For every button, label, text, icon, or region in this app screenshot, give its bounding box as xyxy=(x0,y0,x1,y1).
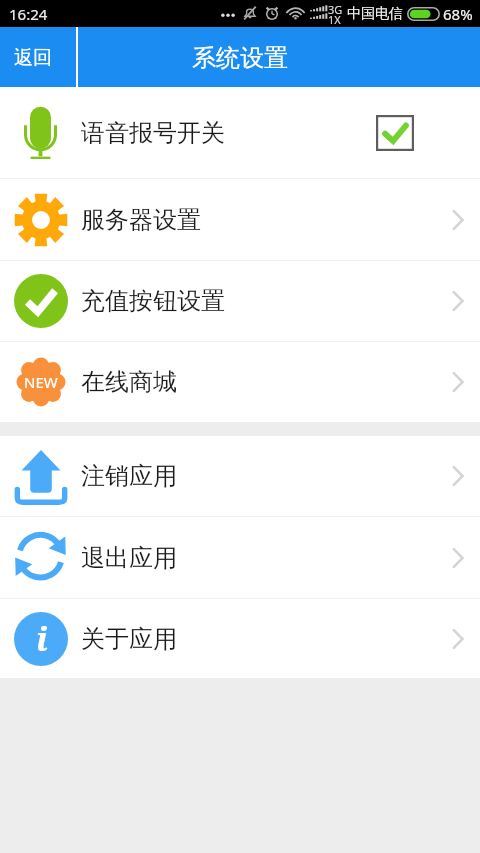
staticText: 注销应用 xyxy=(81,461,177,491)
staticText: 1X xyxy=(328,12,341,24)
button[interactable] xyxy=(376,115,414,151)
button[interactable]: 服务器设置 xyxy=(0,179,480,260)
staticText: 中国电信 xyxy=(347,5,403,23)
staticText: 系统设置 xyxy=(192,43,288,73)
button[interactable]: 语音报号开关 xyxy=(0,87,480,178)
staticText: 返回 xyxy=(14,46,52,70)
staticText: 服务器设置 xyxy=(81,205,201,235)
staticText: 充值按钮设置 xyxy=(81,286,225,316)
staticText: 退出应用 xyxy=(81,543,177,573)
staticText: 语音报号开关 xyxy=(81,118,225,148)
button[interactable]: 返回 xyxy=(0,27,76,87)
staticText: NEW xyxy=(24,372,58,392)
button[interactable]: 注销应用 xyxy=(0,436,480,516)
button[interactable]: NEW xyxy=(0,342,480,422)
staticText: 16:24 xyxy=(9,4,48,24)
button[interactable]: 充值按钮设置 xyxy=(0,261,480,341)
button[interactable]: i xyxy=(0,599,480,678)
staticText: 关于应用 xyxy=(81,624,177,654)
staticText: 3G xyxy=(328,2,343,17)
staticText: 在线商城 xyxy=(81,367,177,397)
staticText: i xyxy=(36,616,48,661)
button[interactable]: 退出应用 xyxy=(0,517,480,598)
staticText: 68% xyxy=(443,4,473,24)
